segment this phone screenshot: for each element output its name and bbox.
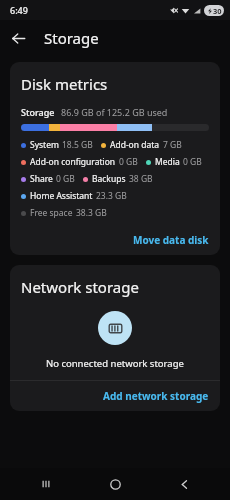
staticText: 6:49 <box>10 4 28 16</box>
staticText: Add-on configuration <box>30 156 116 168</box>
staticText: Add-on data <box>110 139 160 151</box>
staticText: 0 GB <box>56 173 75 185</box>
button[interactable]: Move data disk <box>122 228 220 252</box>
button[interactable]: Back <box>161 468 207 500</box>
staticText: Home Assistant <box>30 190 93 202</box>
staticText: 18.5 GB <box>62 139 93 151</box>
staticText: Add network storage <box>103 389 209 403</box>
staticText: System <box>30 139 59 151</box>
staticText: Share <box>30 173 53 185</box>
staticText: Media <box>155 156 180 168</box>
staticText: 38 GB <box>129 173 153 185</box>
staticText: 30 <box>213 6 222 16</box>
staticText: Network storage <box>21 277 139 297</box>
staticText: Disk metrics <box>21 74 108 94</box>
button[interactable]: Back <box>0 20 36 56</box>
staticText: Storage <box>44 28 99 48</box>
staticText: Free space <box>30 207 73 219</box>
staticText: 7 GB <box>163 139 182 151</box>
staticText: Move data disk <box>133 233 209 247</box>
staticText: Backups <box>92 173 126 185</box>
staticText: 38.3 GB <box>76 207 107 219</box>
staticText: 0 GB <box>183 156 202 168</box>
staticText: 86.9 GB of 125.2 GB used <box>61 106 168 118</box>
staticText: 23.3 GB <box>96 190 127 202</box>
staticText: No connected network storage <box>46 357 184 370</box>
button[interactable]: Home <box>92 468 138 500</box>
button[interactable]: Add network storage <box>92 384 220 408</box>
staticText: 0 GB <box>119 156 138 168</box>
staticText: Storage <box>21 106 55 118</box>
button[interactable]: Recents <box>23 468 69 500</box>
